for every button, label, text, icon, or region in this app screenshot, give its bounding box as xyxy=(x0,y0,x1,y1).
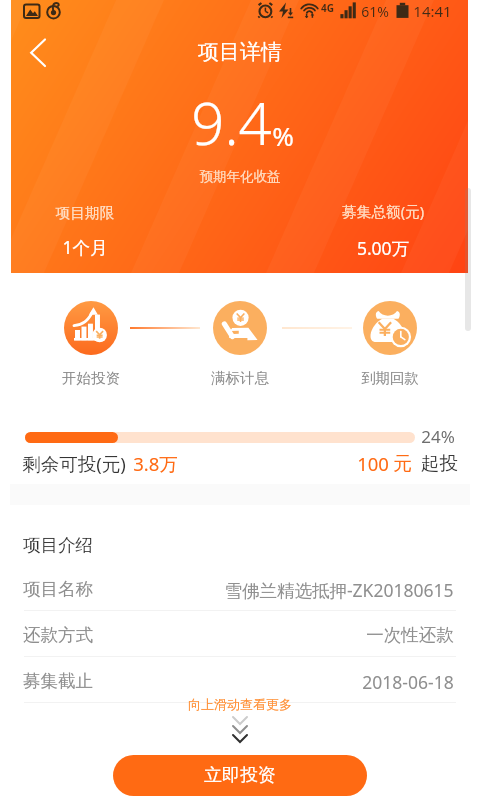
staticText: 还款方式 xyxy=(23,624,93,646)
staticText: 满标计息 xyxy=(180,369,300,387)
button[interactable]: 立即投资 xyxy=(113,755,367,796)
staticText: 1个月 xyxy=(0,235,195,259)
staticText: 立即投资 xyxy=(204,764,276,787)
button[interactable]: 满标计息 xyxy=(213,301,267,355)
staticText: 项目期限 xyxy=(0,204,195,223)
staticText: 剩余可投(元) xyxy=(22,451,126,476)
staticText: 募集截止 xyxy=(23,670,93,692)
staticText: 14:41 xyxy=(413,1,452,21)
staticText: % xyxy=(272,118,294,153)
staticText: 元 xyxy=(393,452,412,475)
staticText: 起投 xyxy=(421,452,458,475)
staticText: 9.4 xyxy=(191,83,272,162)
staticText: 到期回款 xyxy=(330,369,450,387)
staticText: 预期年化收益 xyxy=(130,168,350,185)
staticText: 雪佛兰精选抵押-ZK20180615 xyxy=(224,578,454,602)
staticText: 2018-06-18 xyxy=(362,670,454,694)
staticText: 4G xyxy=(321,1,334,15)
button[interactable]: 到期回款 xyxy=(363,301,417,355)
staticText: 3.8万 xyxy=(133,451,178,476)
staticText: 募集总额(元) xyxy=(273,201,480,221)
button[interactable]: Back xyxy=(9,28,57,76)
staticText: 5.00万 xyxy=(273,236,480,260)
staticText: 项目详情 xyxy=(198,39,282,65)
button[interactable]: 开始投资 xyxy=(64,301,118,355)
staticText: 61% xyxy=(361,2,389,21)
staticText: 项目介绍 xyxy=(23,534,93,556)
staticText: 开始投资 xyxy=(31,369,151,387)
staticText: 100 xyxy=(357,451,389,476)
staticText: 向上滑动查看更多 xyxy=(188,696,292,712)
staticText: 24% xyxy=(421,425,455,448)
staticText: 项目名称 xyxy=(23,578,93,600)
staticText: 一次性还款 xyxy=(366,624,454,646)
